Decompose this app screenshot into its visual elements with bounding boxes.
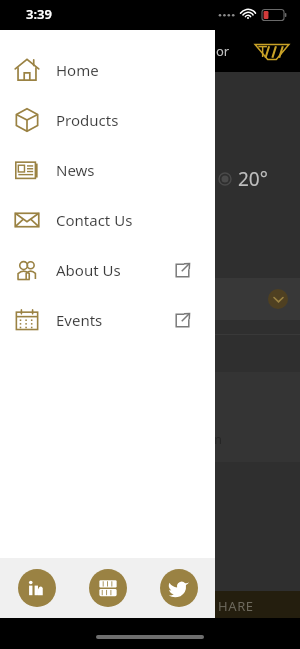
staticText: Home bbox=[56, 60, 99, 80]
staticText: 3:39 bbox=[26, 5, 52, 23]
button[interactable]: Twitter bbox=[160, 569, 198, 607]
staticText: or bbox=[216, 42, 230, 60]
staticText: n bbox=[214, 430, 223, 448]
staticText: HARE bbox=[218, 597, 254, 615]
button[interactable]: Home bbox=[0, 45, 215, 95]
button[interactable]: Contact Us bbox=[0, 195, 215, 245]
button[interactable]: Events bbox=[0, 295, 215, 345]
button[interactable]: News bbox=[0, 145, 215, 195]
button[interactable]: YouTube bbox=[89, 569, 127, 607]
staticText: 20° bbox=[238, 166, 268, 192]
button[interactable]: LinkedIn bbox=[18, 569, 56, 607]
button[interactable]: About Us bbox=[0, 245, 215, 295]
staticText: Contact Us bbox=[56, 210, 133, 230]
staticText: About Us bbox=[56, 260, 121, 280]
button[interactable]: Products bbox=[0, 95, 215, 145]
staticText: Products bbox=[56, 110, 119, 130]
staticText: Events bbox=[56, 310, 103, 330]
staticText: News bbox=[56, 160, 95, 180]
